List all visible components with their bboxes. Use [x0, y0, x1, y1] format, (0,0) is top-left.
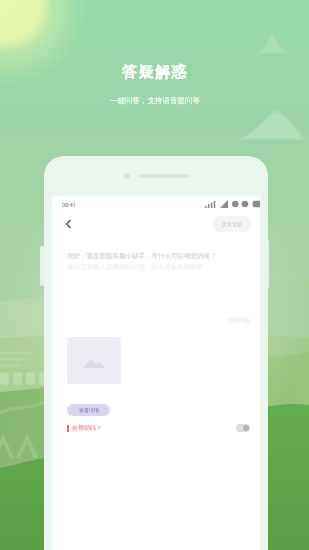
staticText: 查看详情: [79, 407, 99, 413]
button[interactable]: 查看详情: [67, 404, 110, 416]
staticText: 历史记录: [222, 221, 242, 227]
staticText: 答疑解惑: [122, 63, 188, 82]
staticText: 请在下方输入您遇到的问题，我会尽快为您解答: [67, 263, 204, 271]
button[interactable]: Back: [62, 217, 76, 231]
staticText: 我的问题: [228, 317, 250, 324]
button[interactable]: Image attachment: [67, 337, 121, 384]
button[interactable]: 历史记录: [212, 216, 252, 232]
staticText: 09:41: [62, 201, 77, 208]
staticText: 有帮助吗？: [72, 424, 102, 432]
button[interactable]: More options: [236, 424, 250, 432]
staticText: 一键问答，支持语音提问等: [110, 96, 200, 105]
staticText: 您好，我是智能客服小助手，有什么可以帮您的呢？: [67, 252, 217, 260]
